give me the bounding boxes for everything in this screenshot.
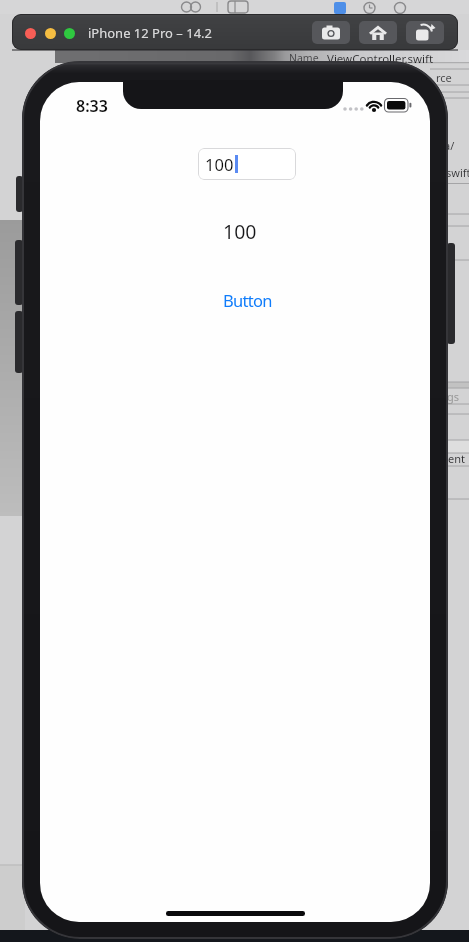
staticText: Name bbox=[289, 51, 319, 65]
staticText: Button bbox=[223, 289, 272, 311]
button[interactable]: 100 bbox=[198, 148, 296, 180]
staticText: 8:33 bbox=[76, 95, 108, 117]
staticText: 100 bbox=[205, 153, 234, 175]
staticText: a/ bbox=[444, 138, 455, 153]
staticText: gs bbox=[447, 389, 460, 404]
button[interactable] bbox=[64, 28, 75, 39]
staticText: 100 bbox=[223, 218, 257, 244]
staticText: ent bbox=[448, 451, 465, 466]
staticText: rce bbox=[436, 70, 452, 85]
button[interactable]: Button bbox=[207, 288, 288, 311]
staticText: iPhone 12 Pro – 14.2 bbox=[88, 24, 213, 42]
button[interactable] bbox=[25, 28, 36, 39]
button[interactable] bbox=[312, 21, 350, 44]
button[interactable] bbox=[406, 21, 444, 44]
staticText: swift bbox=[446, 165, 469, 180]
button[interactable] bbox=[359, 21, 397, 44]
staticText: ViewController.swift bbox=[327, 51, 434, 67]
button[interactable] bbox=[45, 28, 56, 39]
